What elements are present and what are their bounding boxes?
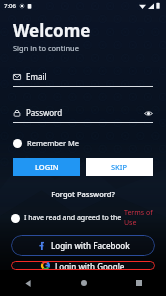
staticText: Welcome xyxy=(13,19,91,42)
staticText: LOGIN xyxy=(35,162,59,172)
staticText: Remember Me xyxy=(27,138,80,148)
staticText: 7:06 xyxy=(4,2,16,10)
staticText: SKIP xyxy=(111,162,128,172)
staticText: Email xyxy=(26,71,47,82)
button[interactable]: Remember Me xyxy=(13,137,80,149)
staticText: Sign in to continue xyxy=(13,43,79,53)
staticText: Login with Facebook xyxy=(51,240,130,251)
button[interactable]: SKIP xyxy=(86,158,153,176)
button[interactable]: I have read and agreed to the xyxy=(11,208,166,228)
button[interactable]: Email xyxy=(13,71,153,87)
button[interactable]: Login with Google xyxy=(11,261,155,270)
button[interactable]: Recent apps xyxy=(111,270,166,296)
staticText: Terms of Use xyxy=(124,208,166,228)
button[interactable]: Back xyxy=(0,270,56,296)
staticText: I have read and agreed to the xyxy=(24,213,124,223)
staticText: Login with Google xyxy=(55,261,125,270)
button[interactable]: Login with Facebook xyxy=(11,235,155,256)
button[interactable]: Home xyxy=(56,270,111,296)
staticText: Password xyxy=(26,107,63,118)
button[interactable]: LOGIN xyxy=(13,158,80,176)
button[interactable]: Forgot Password? xyxy=(49,187,117,201)
button[interactable]: Password xyxy=(13,107,153,123)
staticText: Forgot Password? xyxy=(51,189,115,199)
button[interactable]: Show password xyxy=(143,108,153,118)
